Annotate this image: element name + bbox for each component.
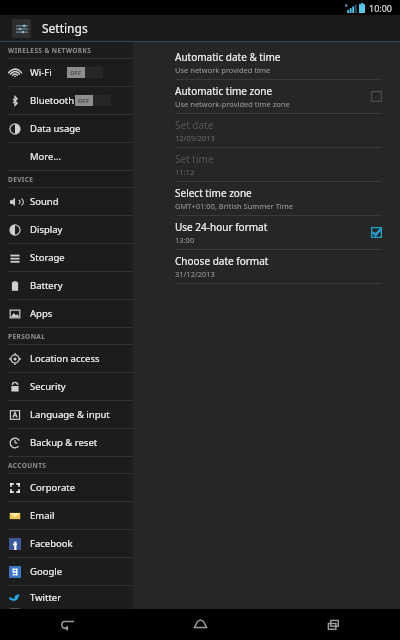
button[interactable]: Language & input	[0, 401, 133, 428]
staticText: 10:00	[369, 2, 393, 14]
button[interactable]: Facebook	[0, 530, 133, 557]
button[interactable]: Toggle off	[67, 67, 103, 78]
staticText: Select time zone	[175, 186, 252, 200]
button[interactable]: Apps	[0, 300, 133, 327]
button[interactable]: Automatic date & time	[133, 46, 400, 79]
staticText: OFF	[78, 97, 90, 105]
staticText: Set time	[175, 152, 214, 166]
button[interactable]: Wi-Fi	[0, 59, 133, 86]
button[interactable]: Location access	[0, 345, 133, 372]
staticText: Automatic date & time	[175, 50, 281, 64]
button[interactable]: Back	[0, 609, 134, 640]
staticText: 11:12	[175, 167, 195, 177]
staticText: 31/12/2013	[175, 269, 215, 279]
staticText: Backup & reset	[30, 436, 98, 449]
button[interactable]: Twitter	[0, 586, 133, 609]
staticText: 12/09/2013	[175, 133, 215, 143]
staticText: Bluetooth	[30, 94, 75, 107]
staticText: DEVICE	[8, 175, 34, 184]
button[interactable]: Choose date format	[133, 250, 400, 283]
staticText: More...	[30, 150, 62, 163]
staticText: Twitter	[30, 591, 62, 604]
staticText: Apps	[30, 307, 53, 320]
button[interactable]: Set time	[133, 148, 400, 181]
button[interactable]: Google	[0, 558, 133, 585]
button[interactable]: Settings	[12, 19, 31, 38]
staticText: GMT+01:00, British Summer Time	[175, 201, 293, 211]
staticText: PERSONAL	[8, 332, 46, 341]
button[interactable]: Email	[0, 502, 133, 529]
button[interactable]: Corporate	[0, 474, 133, 501]
staticText: Sound	[30, 195, 59, 208]
button[interactable]: Toggle off	[75, 95, 111, 106]
staticText: Automatic time zone	[175, 84, 273, 98]
staticText: Security	[30, 380, 66, 393]
button[interactable]: More...	[0, 143, 133, 170]
button[interactable]: Data usage	[0, 115, 133, 142]
staticText: Email	[30, 509, 55, 522]
staticText: Data usage	[30, 122, 81, 135]
staticText: Use network provided time	[175, 65, 271, 75]
staticText: Battery	[30, 279, 63, 292]
button[interactable]: Home	[134, 609, 267, 640]
button[interactable]: Backup & reset	[0, 429, 133, 456]
staticText: Use network-provided time zone	[175, 99, 290, 109]
staticText: OFF	[70, 69, 82, 77]
staticText: Facebook	[30, 537, 73, 550]
staticText: Wi-Fi	[30, 66, 52, 79]
staticText: Storage	[30, 251, 65, 264]
button[interactable]: Use 24-hour format	[133, 216, 400, 249]
button[interactable]: Storage	[0, 244, 133, 271]
staticText: Google	[30, 565, 63, 578]
staticText: Settings	[42, 20, 88, 36]
button[interactable]: Security	[0, 373, 133, 400]
staticText: WIRELESS & NETWORKS	[8, 46, 92, 55]
button[interactable]: Unchecked	[371, 91, 382, 102]
staticText: Use 24-hour format	[175, 220, 268, 234]
button[interactable]: Sound	[0, 188, 133, 215]
staticText: Corporate	[30, 481, 76, 494]
button[interactable]: Recent apps	[267, 609, 400, 640]
staticText: 13:00	[175, 235, 195, 245]
staticText: Choose date format	[175, 254, 269, 268]
button[interactable]: Set date	[133, 114, 400, 147]
button[interactable]: Checked	[371, 227, 382, 238]
staticText: Display	[30, 223, 63, 236]
button[interactable]: Select time zone	[133, 182, 400, 215]
staticText: Language & input	[30, 408, 110, 421]
button[interactable]: Bluetooth	[0, 87, 133, 114]
staticText: Set date	[175, 118, 214, 132]
staticText: Location access	[30, 352, 100, 365]
staticText: ACCOUNTS	[8, 461, 47, 470]
button[interactable]: Display	[0, 216, 133, 243]
button[interactable]: Automatic time zone	[133, 80, 400, 113]
button[interactable]: Battery	[0, 272, 133, 299]
